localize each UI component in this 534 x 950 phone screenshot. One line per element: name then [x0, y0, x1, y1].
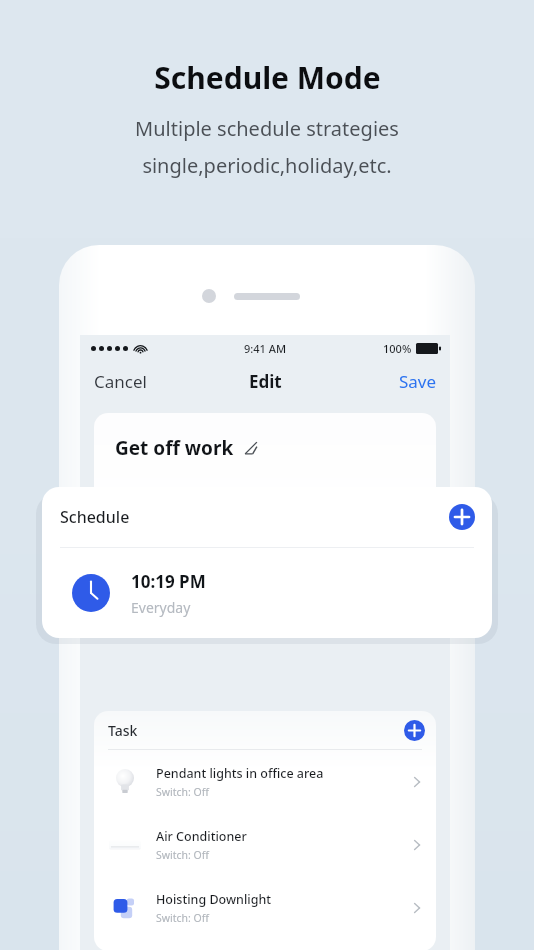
staticText: Pendant lights in office area [156, 765, 324, 782]
staticText: single,periodic,holiday,etc. [142, 152, 392, 179]
button[interactable]: Cancel [80, 364, 157, 399]
staticText: Cancel [94, 370, 147, 393]
button[interactable]: Get off work [94, 413, 436, 543]
staticText: Edit [249, 370, 282, 393]
staticText: Save [399, 370, 437, 393]
button[interactable]: 10:19 PM [42, 548, 492, 638]
staticText: Switch: Off [156, 848, 210, 862]
staticText: Schedule [60, 506, 130, 528]
staticText: Switch: Off [156, 911, 210, 925]
button[interactable]: Save [389, 364, 450, 399]
button[interactable]: Air Conditioner [94, 813, 436, 876]
staticText: Hoisting Downlight [156, 891, 272, 908]
staticText: Everyday [131, 598, 191, 617]
staticText: 9:41 AM [244, 341, 287, 356]
staticText: Get off work [115, 435, 234, 461]
staticText: 10:19 PM [131, 570, 206, 593]
staticText: Schedule Mode [154, 57, 381, 98]
button[interactable]: Add task [404, 720, 425, 741]
button[interactable]: Hoisting Downlight [94, 876, 436, 939]
staticText: Air Conditioner [156, 828, 247, 845]
button[interactable]: Pendant lights in office area [94, 750, 436, 813]
staticText: Switch: Off [156, 785, 210, 799]
staticText: Multiple schedule strategies [135, 115, 399, 142]
other: Edit name [244, 441, 258, 455]
staticText: Task [108, 721, 138, 740]
staticText: 100% [383, 341, 412, 356]
button[interactable]: Add schedule [449, 504, 475, 530]
